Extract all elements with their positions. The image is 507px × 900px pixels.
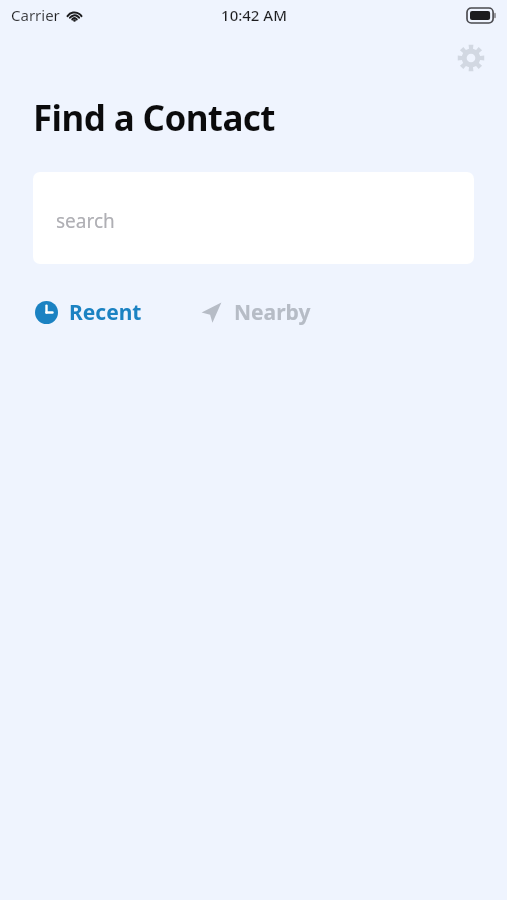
staticText: Carrier bbox=[11, 5, 60, 25]
staticText: 10:42 AM bbox=[221, 5, 287, 25]
button[interactable]: Recent bbox=[33, 292, 144, 333]
staticText: search bbox=[56, 208, 115, 234]
button[interactable]: Settings bbox=[449, 36, 493, 80]
staticText: Find a Contact bbox=[33, 94, 275, 142]
button[interactable]: Nearby bbox=[198, 292, 313, 333]
staticText: Nearby bbox=[234, 298, 311, 327]
button[interactable]: search bbox=[33, 172, 474, 264]
staticText: Recent bbox=[69, 298, 142, 327]
